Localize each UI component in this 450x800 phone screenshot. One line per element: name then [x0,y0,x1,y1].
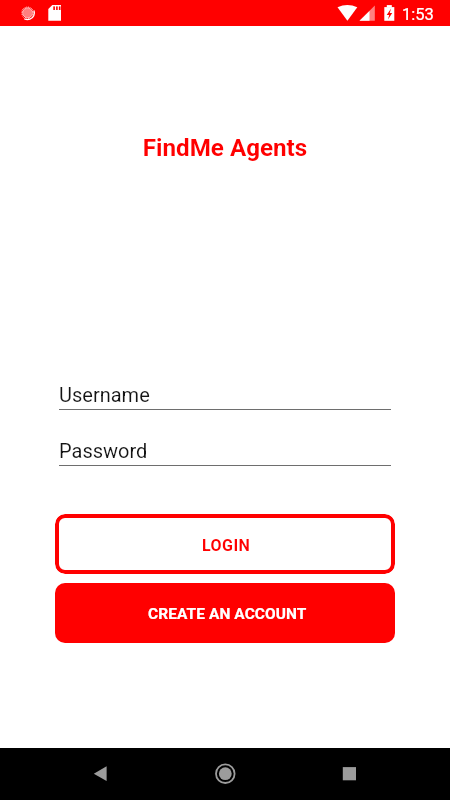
staticText: Username [59,383,150,406]
staticText: CREATE AN ACCOUNT [148,605,307,623]
button[interactable]: Username [59,383,391,410]
staticText: FindMe Agents [0,134,450,162]
button[interactable]: CREATE AN ACCOUNT [55,583,395,643]
button[interactable]: Back [76,748,124,800]
staticText: 1:53 [402,5,434,24]
staticText: LOGIN [202,536,251,555]
button[interactable]: Recent apps [325,748,373,800]
staticText: Password [59,439,148,462]
button[interactable]: LOGIN [55,514,395,574]
button[interactable]: Home [201,748,249,800]
button[interactable]: Password [59,439,391,466]
